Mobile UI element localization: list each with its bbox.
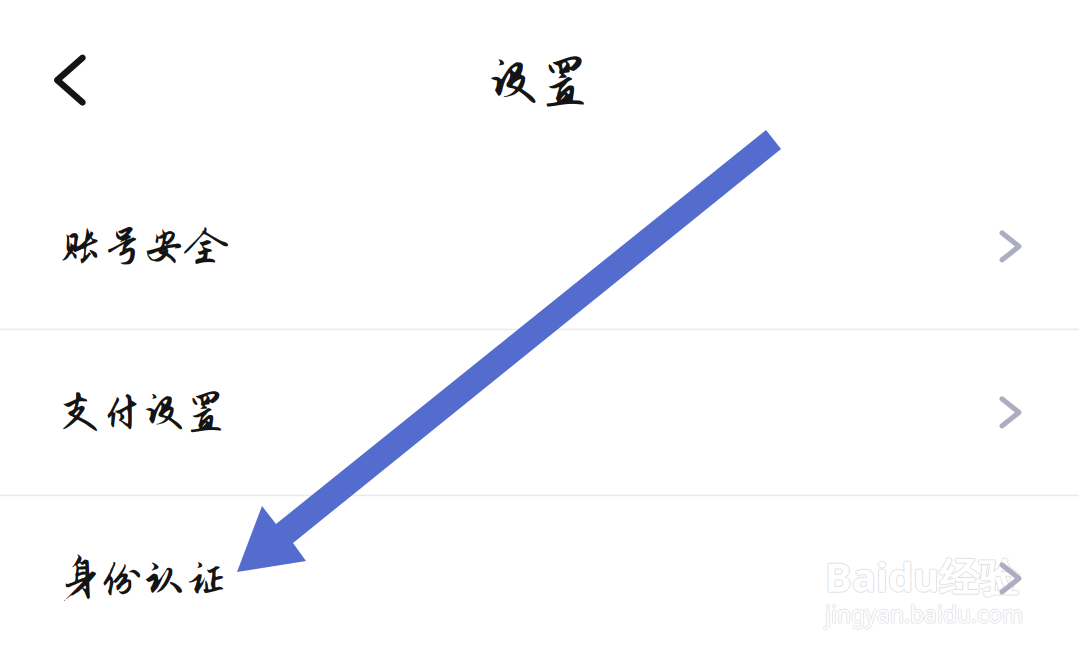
staticText: Baidu经验 bbox=[825, 550, 1019, 603]
staticText: jingyan.baidu.com bbox=[824, 599, 1022, 629]
staticText: 设置 bbox=[487, 53, 591, 111]
staticText: Baidu经验 bbox=[825, 551, 1019, 604]
button[interactable]: 身份认证 bbox=[0, 496, 1079, 649]
staticText: jingyan.baidu.com bbox=[825, 600, 1023, 630]
button[interactable]: 账号安全 bbox=[0, 164, 1079, 329]
staticText: 身份认证 bbox=[59, 555, 227, 602]
button[interactable]: 支付设置 bbox=[0, 330, 1079, 495]
staticText: 账号安全 bbox=[59, 223, 227, 270]
staticText: 支付设置 bbox=[59, 389, 227, 436]
staticText: jingyan.baidu.com bbox=[825, 598, 1023, 628]
staticText: jingyan.baidu.com bbox=[826, 599, 1024, 629]
staticText: jingyan.baidu.com bbox=[825, 599, 1023, 629]
staticText: Baidu经验 bbox=[824, 550, 1018, 603]
staticText: Baidu经验 bbox=[825, 549, 1019, 602]
staticText: Baidu经验 bbox=[826, 550, 1020, 603]
button[interactable]: Back bbox=[0, 34, 110, 130]
